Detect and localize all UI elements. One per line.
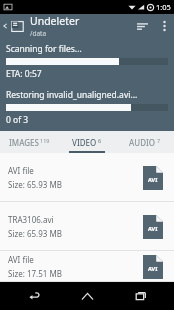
other: AVI file [140,163,166,193]
staticText: Undeleter [30,14,80,28]
staticText: IMAGES [9,137,39,148]
staticText: Size: 65.93 MB [8,228,62,239]
button[interactable]: Sort [130,14,154,38]
staticText: TRA3106.avi [8,214,54,225]
staticText: 6 [98,137,102,144]
button[interactable]: Back [14,282,54,310]
button[interactable]: More options [154,14,174,38]
staticText: 7 [157,137,161,144]
button[interactable]: AVI file [0,251,174,282]
staticText: AVI file [8,165,34,176]
button[interactable]: Navigate up [0,14,26,38]
button[interactable]: VIDEO [58,131,116,153]
staticText: /data [30,29,47,38]
staticText: Scanning for files... [6,43,82,55]
staticText: AVI [148,176,158,183]
staticText: Size: 17.51 MB [8,268,62,279]
staticText: AVI [148,225,158,232]
other: AVI file [140,252,166,282]
button[interactable]: IMAGES [0,131,58,153]
staticText: AVI [148,265,158,272]
button[interactable]: TRA3106.avi [0,202,174,251]
staticText: 0 of 3 [6,114,29,126]
staticText: AVI file [8,254,34,265]
button[interactable]: Home [67,282,107,310]
button[interactable]: AUDIO [116,131,174,153]
staticText: ETA: 0:57 [6,68,42,80]
staticText: Restoring invalid_unaligned.avi... [6,89,138,101]
staticText: VIDEO [72,137,97,148]
button[interactable]: AVI file [0,153,174,202]
button[interactable]: Recents [121,282,161,310]
staticText: 119 [40,137,50,144]
staticText: AUDIO [129,137,156,148]
other: AVI file [140,212,166,242]
staticText: Size: 65.93 MB [8,179,62,190]
staticText: 1:05 [156,2,171,12]
